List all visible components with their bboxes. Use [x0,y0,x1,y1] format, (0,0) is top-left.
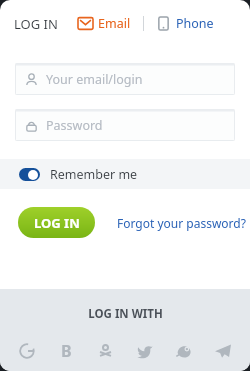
button[interactable]: Phone [154,11,216,36]
staticText: LOG IN [14,15,58,33]
staticText: LOG IN [34,214,80,232]
staticText: Your email/login [46,71,143,88]
button[interactable]: Odnoklassniki [92,338,118,364]
button[interactable]: Forgot your password? [113,211,250,235]
button[interactable]: Your email/login [15,63,235,95]
button[interactable]: Telegram [210,338,236,364]
button[interactable]: Steam [171,338,197,364]
staticText: Email [98,15,131,32]
staticText: B [61,340,72,362]
staticText: Remember me [50,166,138,183]
staticText: Forgot your password? [117,215,246,231]
button[interactable]: Email [76,11,133,36]
staticText: Password [46,117,103,134]
button[interactable]: Remember me [0,159,250,189]
button[interactable]: Password [15,109,235,141]
staticText: LOG IN WITH [88,306,163,322]
staticText: Phone [176,15,214,32]
button[interactable]: LOG IN [18,207,95,238]
button[interactable]: Twitter [132,338,158,364]
button[interactable]: VK [53,338,79,364]
button[interactable]: Google [14,338,40,364]
